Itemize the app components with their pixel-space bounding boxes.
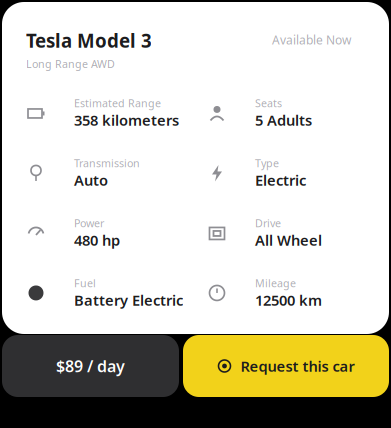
staticText: Available Now [272, 32, 351, 48]
staticText: Mileage [255, 276, 296, 290]
staticText: Battery Electric [74, 290, 183, 310]
staticText: Long Range AWD [26, 57, 115, 71]
staticText: 5 Adults [255, 110, 312, 130]
staticText: Auto [74, 170, 108, 190]
staticText: Drive [255, 216, 281, 230]
staticText: 358 kilometers [74, 110, 179, 130]
button[interactable]: Request this car [183, 335, 389, 397]
staticText: All Wheel [255, 230, 322, 250]
staticText: Electric [255, 170, 306, 190]
staticText: 480 hp [74, 230, 120, 250]
button[interactable]: $89 / day [2, 335, 179, 397]
staticText: 12500 km [255, 290, 322, 310]
staticText: Tesla Model 3 [26, 28, 152, 53]
staticText: Power [74, 216, 104, 230]
staticText: Transmission [74, 156, 140, 170]
staticText: Request this car [240, 356, 354, 376]
staticText: Seats [255, 96, 282, 110]
staticText: $89 / day [56, 355, 125, 377]
staticText: Fuel [74, 276, 96, 290]
staticText: Estimated Range [74, 96, 161, 110]
staticText: Type [255, 156, 279, 170]
